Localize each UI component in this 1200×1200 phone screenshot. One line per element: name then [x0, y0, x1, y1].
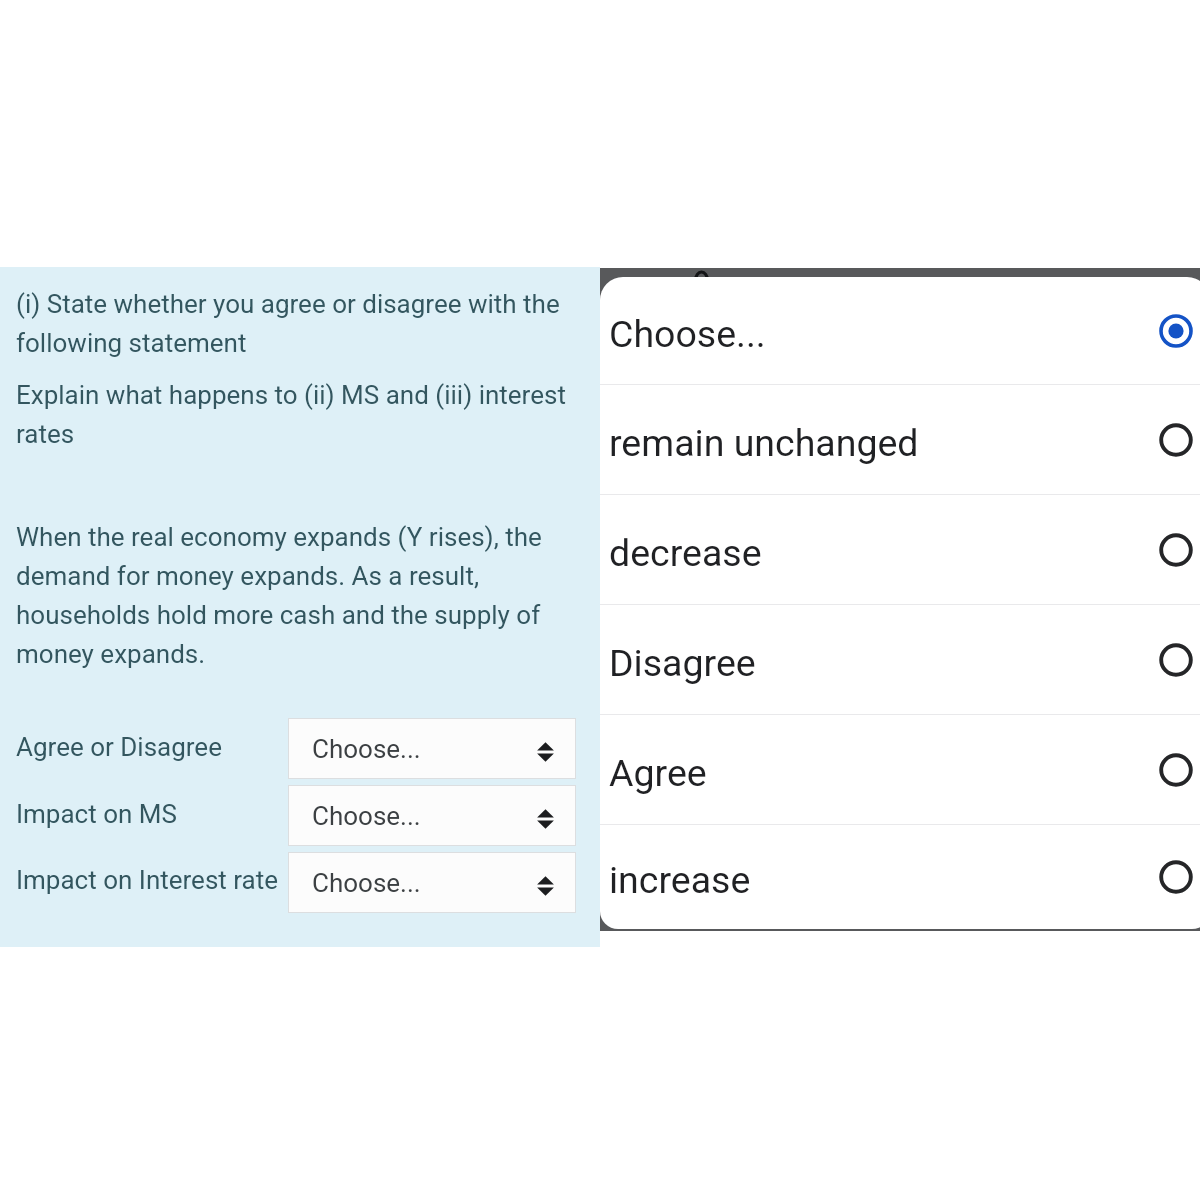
staticText: Choose... — [312, 801, 421, 831]
button[interactable]: Agree — [600, 715, 1200, 824]
staticText: decrease — [609, 531, 762, 575]
staticText: increase — [609, 858, 751, 902]
staticText: Agree or Disagree — [16, 725, 222, 764]
other: Not selected — [1157, 421, 1195, 459]
staticText: Impact on MS — [16, 792, 177, 831]
staticText: Disagree — [609, 641, 756, 685]
button[interactable]: Disagree — [600, 605, 1200, 714]
staticText: Explain what happens to (ii) MS and (iii… — [16, 373, 566, 451]
button[interactable]: Impact on Interest rate dropdown, Choose… — [288, 852, 576, 913]
staticText: remain unchanged — [609, 421, 919, 465]
button[interactable]: Agree or Disagree dropdown, Choose... — [288, 718, 576, 779]
other: Not selected — [1157, 641, 1195, 679]
button[interactable]: Choose... — [600, 277, 1200, 384]
other: Selected — [1157, 312, 1195, 350]
other: Not selected — [1157, 531, 1195, 569]
button[interactable]: Impact on MS dropdown, Choose... — [288, 785, 576, 846]
button[interactable]: decrease — [600, 495, 1200, 604]
staticText: Choose... — [312, 734, 421, 764]
button[interactable]: remain unchanged — [600, 385, 1200, 494]
staticText: When the real economy expands (Y rises),… — [16, 515, 542, 671]
other: Not selected — [1157, 751, 1195, 789]
other: Not selected — [1157, 858, 1195, 896]
button[interactable]: increase — [600, 825, 1200, 929]
staticText: Impact on Interest rate — [16, 858, 279, 897]
staticText: Choose... — [609, 312, 766, 356]
staticText: Choose... — [312, 868, 421, 898]
staticText: (i) State whether you agree or disagree … — [16, 282, 560, 360]
staticText: Agree — [609, 751, 707, 795]
